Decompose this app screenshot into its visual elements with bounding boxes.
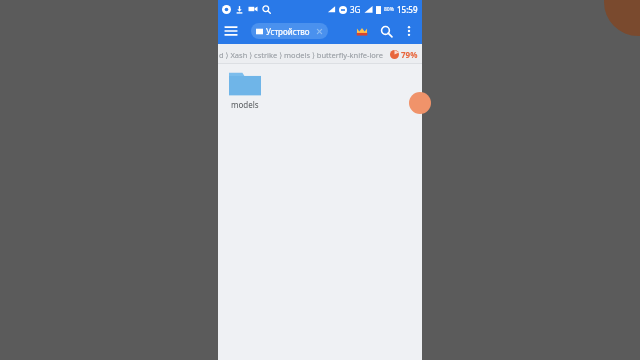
button[interactable]: Action bbox=[409, 92, 431, 114]
staticText: 15:59 bbox=[397, 4, 418, 15]
button[interactable]: More options bbox=[398, 20, 420, 42]
button[interactable]: Search bbox=[374, 19, 398, 43]
staticText: Устройство bbox=[266, 26, 310, 37]
button[interactable]: Устройство bbox=[251, 23, 328, 39]
button[interactable]: Premium bbox=[350, 19, 374, 43]
button[interactable]: models bbox=[224, 70, 266, 110]
staticText: 80% bbox=[384, 6, 394, 13]
staticText: 79% bbox=[401, 49, 418, 60]
button[interactable]: Menu bbox=[218, 18, 244, 44]
button[interactable]: 79% bbox=[390, 49, 418, 60]
staticText: 3G bbox=[350, 4, 361, 15]
button[interactable]: d ⟩ Xash ⟩ cstrike ⟩ models ⟩ butterfly-… bbox=[219, 50, 384, 60]
staticText: models bbox=[231, 99, 259, 110]
